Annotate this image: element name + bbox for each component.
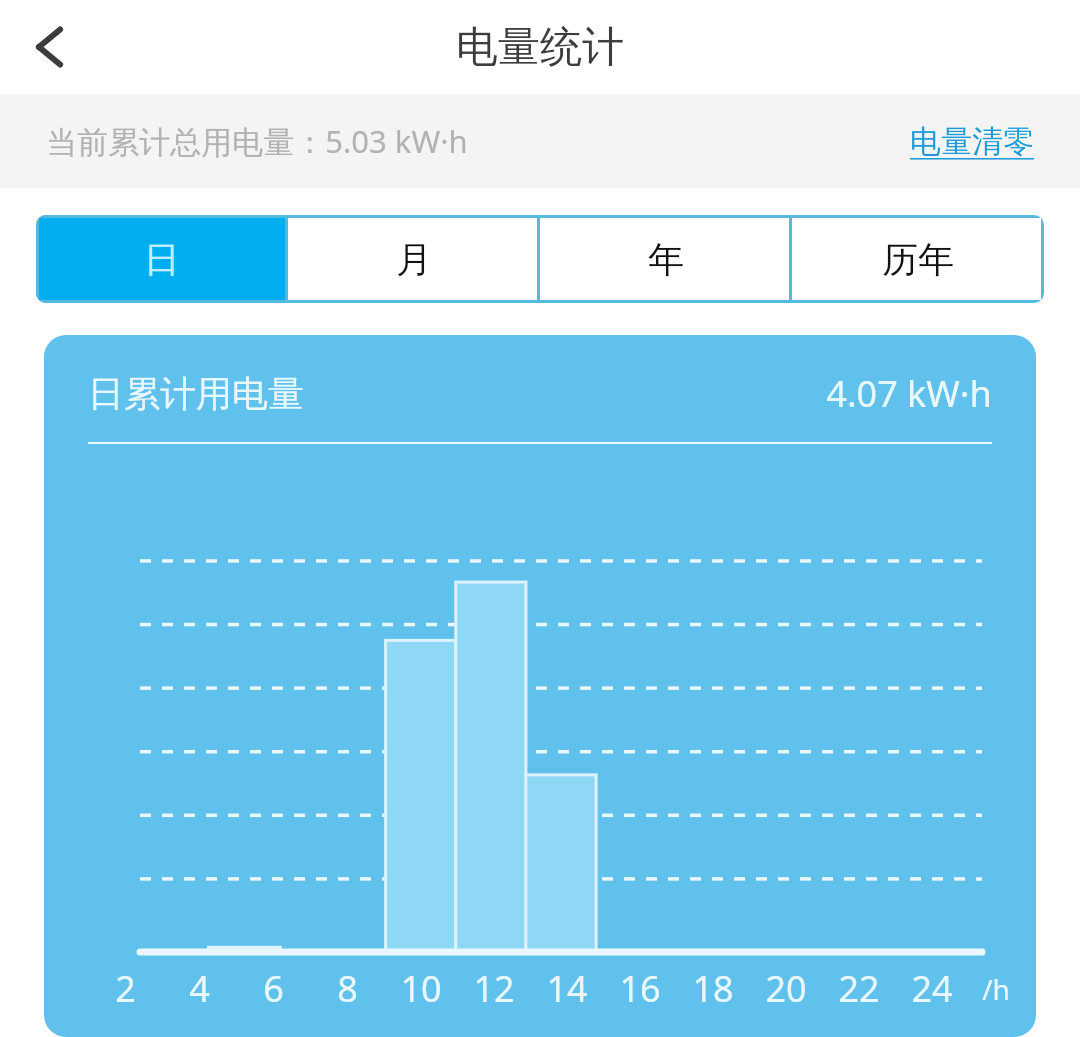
staticText: 14 [546, 964, 588, 1013]
button[interactable]: 电量清零 [910, 122, 1034, 161]
staticText: /h [982, 970, 1010, 1008]
staticText: 18 [692, 964, 734, 1013]
staticText: 电量清零 [910, 122, 1034, 161]
button[interactable]: 月 [288, 215, 540, 303]
staticText: 历年 [882, 237, 954, 282]
staticText: 当前累计总用电量：5.03 kW·h [46, 120, 468, 162]
staticText: 年 [648, 237, 684, 282]
staticText: 8 [337, 964, 358, 1013]
staticText: 10 [400, 964, 442, 1013]
button[interactable]: 日 [36, 215, 288, 303]
staticText: 日累计用电量 [88, 371, 304, 416]
staticText: 20 [765, 964, 807, 1013]
staticText: 4.07 kW·h [826, 369, 992, 418]
staticText: 2 [115, 964, 136, 1013]
button[interactable]: Back [4, 1, 96, 93]
staticText: 月 [396, 237, 432, 282]
staticText: 电量统计 [456, 21, 624, 74]
staticText: 16 [619, 964, 661, 1013]
staticText: 日 [144, 237, 180, 282]
button[interactable]: 历年 [792, 215, 1044, 303]
staticText: 12 [473, 964, 515, 1013]
button[interactable]: 年 [540, 215, 792, 303]
staticText: 4 [189, 964, 210, 1013]
staticText: 6 [263, 964, 284, 1013]
staticText: 24 [911, 964, 953, 1013]
staticText: 22 [838, 964, 880, 1013]
